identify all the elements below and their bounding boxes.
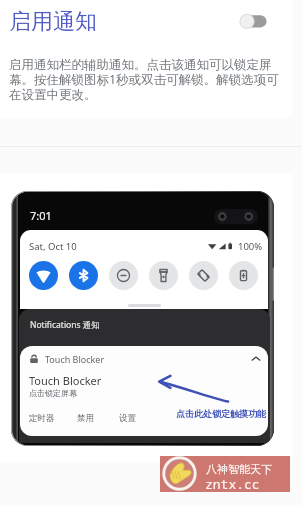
staticText: 启用通知栏的辅助通知。点击该通知可以锁定屏幕。按住解锁图标1秒或双击可解锁。解锁… bbox=[9, 57, 279, 102]
button[interactable]: zntx.cc watermark bbox=[160, 456, 290, 492]
staticText: 八神智能天下 bbox=[206, 462, 272, 476]
button[interactable]: 设置 bbox=[119, 413, 136, 424]
button[interactable]: Wi-Fi bbox=[29, 261, 58, 290]
button[interactable]: 定时器 bbox=[29, 413, 55, 424]
button[interactable]: 禁用 bbox=[77, 413, 94, 424]
staticText: 7:01 bbox=[30, 208, 52, 223]
button[interactable]: Collapse notification bbox=[246, 349, 266, 369]
staticText: Touch Blocker bbox=[29, 373, 102, 388]
staticText: 点击此处锁定触摸功能 bbox=[176, 408, 266, 419]
button[interactable]: Auto rotate bbox=[189, 261, 218, 290]
button[interactable]: Battery saver bbox=[229, 261, 258, 290]
button[interactable]: Flashlight bbox=[149, 261, 178, 290]
button[interactable]: Enable notification toggle bbox=[232, 6, 276, 37]
staticText: 点击锁定屏幕 bbox=[29, 388, 77, 398]
staticText: Sat, Oct 10 bbox=[29, 240, 77, 253]
staticText: zntx.cc bbox=[205, 475, 260, 493]
staticText: Notifications 通知 bbox=[30, 319, 100, 331]
button[interactable]: Bluetooth bbox=[69, 261, 98, 290]
staticText: 100% bbox=[238, 240, 263, 253]
staticText: 启用通知 bbox=[9, 8, 97, 36]
staticText: Touch Blocker bbox=[45, 353, 105, 365]
button[interactable]: Do not disturb bbox=[109, 261, 138, 290]
